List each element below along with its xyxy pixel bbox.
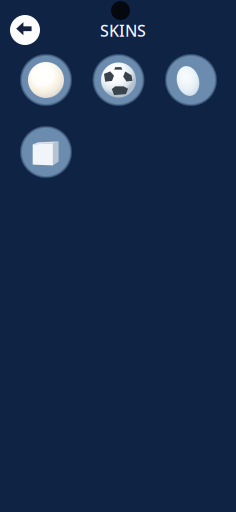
button[interactable]: Football skin [93, 55, 143, 105]
button[interactable]: Egg skin [166, 55, 216, 105]
staticText: SKINS [100, 20, 146, 41]
button[interactable]: Back [10, 15, 40, 45]
button[interactable]: Cube skin [21, 127, 71, 177]
button[interactable]: Pearl skin [21, 55, 71, 105]
